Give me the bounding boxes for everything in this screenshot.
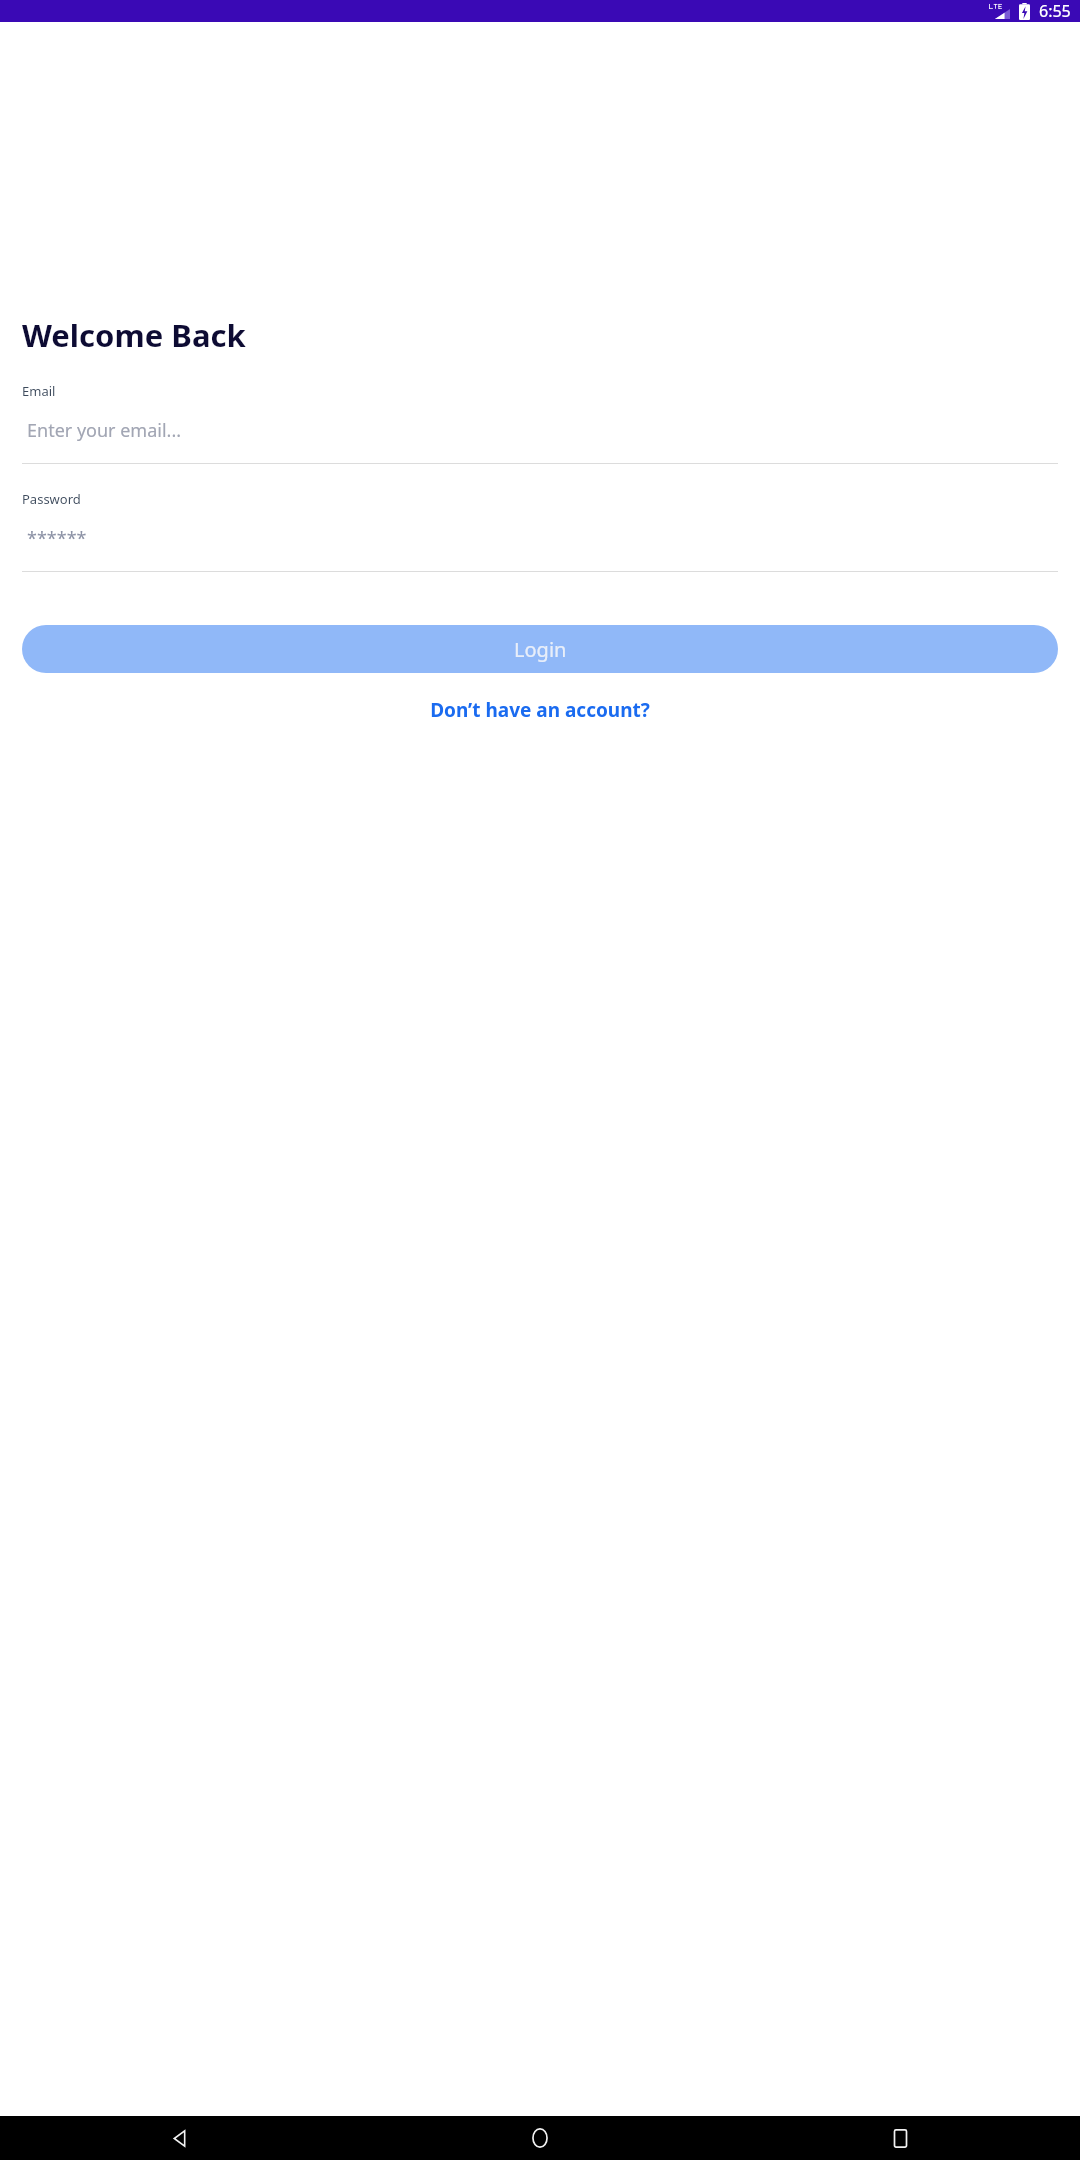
button[interactable]: Home: [360, 2116, 720, 2160]
button[interactable]: Don’t have an account?: [418, 691, 662, 729]
button[interactable]: Enter your email...: [22, 400, 1058, 464]
staticText: 6:55: [1039, 0, 1071, 22]
button[interactable]: Back: [0, 2116, 360, 2160]
staticText: Welcome Back: [22, 314, 246, 356]
button[interactable]: Recent apps: [720, 2116, 1080, 2160]
staticText: Password: [22, 490, 81, 508]
button[interactable]: Login: [22, 625, 1058, 673]
button[interactable]: ******: [22, 508, 1058, 572]
staticText: ******: [27, 526, 87, 551]
staticText: Don’t have an account?: [430, 697, 650, 723]
staticText: Login: [514, 636, 567, 663]
staticText: Email: [22, 382, 56, 400]
staticText: Enter your email...: [27, 418, 182, 443]
